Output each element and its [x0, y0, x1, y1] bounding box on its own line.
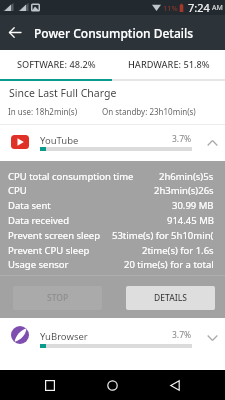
- staticText: Prevent screen sleep: [8, 229, 101, 242]
- staticText: DETAILS: [154, 292, 187, 304]
- staticText: YouTube: [40, 134, 79, 147]
- staticText: 11%: [163, 3, 178, 13]
- button[interactable]: Expand: [199, 318, 225, 357]
- button[interactable]: YouTube: [0, 125, 225, 161]
- button[interactable]: Home: [91, 370, 133, 400]
- button[interactable]: YuBrowser: [0, 318, 225, 357]
- staticText: 914.45 MB: [167, 214, 214, 227]
- staticText: On standby: 23h10min(s): [102, 106, 196, 117]
- button[interactable]: SOFTWARE: 48.2%: [0, 50, 112, 79]
- staticText: In use: 18h2min(s): [8, 106, 78, 117]
- button[interactable]: DETAILS: [126, 286, 215, 310]
- staticText: Power Consumption Details: [34, 25, 194, 41]
- staticText: CPU: [8, 184, 27, 197]
- staticText: HARDWARE: 51.8%: [128, 58, 210, 71]
- staticText: 2time(s) for 1.6s: [142, 244, 214, 257]
- staticText: 53time(s) for 5h10min(: [112, 229, 214, 242]
- button[interactable]: Back: [0, 15, 30, 50]
- staticText: Data received: [8, 214, 69, 227]
- staticText: 3.7%: [172, 329, 192, 341]
- staticText: CPU total consumption time: [8, 170, 134, 183]
- staticText: 3.7%: [172, 133, 192, 145]
- staticText: 7:24: [188, 0, 210, 15]
- staticText: AM: [212, 3, 223, 13]
- button[interactable]: STOP: [13, 286, 102, 310]
- staticText: 20 time(s) for a total: [124, 258, 214, 271]
- staticText: 30.99 MB: [172, 199, 214, 212]
- staticText: Since Last Full Charge: [9, 86, 117, 100]
- staticText: YuBrowser: [40, 330, 88, 343]
- button[interactable]: Collapse: [199, 125, 225, 161]
- staticText: Usage sensor: [8, 258, 69, 271]
- staticText: 2h6min(s)5s: [159, 170, 214, 183]
- button[interactable]: HARDWARE: 51.8%: [112, 50, 225, 79]
- staticText: Prevent CPU sleep: [8, 244, 90, 257]
- button[interactable]: Recent apps: [29, 370, 71, 400]
- staticText: Data sent: [8, 199, 51, 212]
- button[interactable]: Back: [154, 370, 196, 400]
- staticText: STOP: [47, 292, 69, 304]
- staticText: 2h3min(s)26s: [154, 184, 214, 197]
- staticText: SOFTWARE: 48.2%: [17, 58, 96, 71]
